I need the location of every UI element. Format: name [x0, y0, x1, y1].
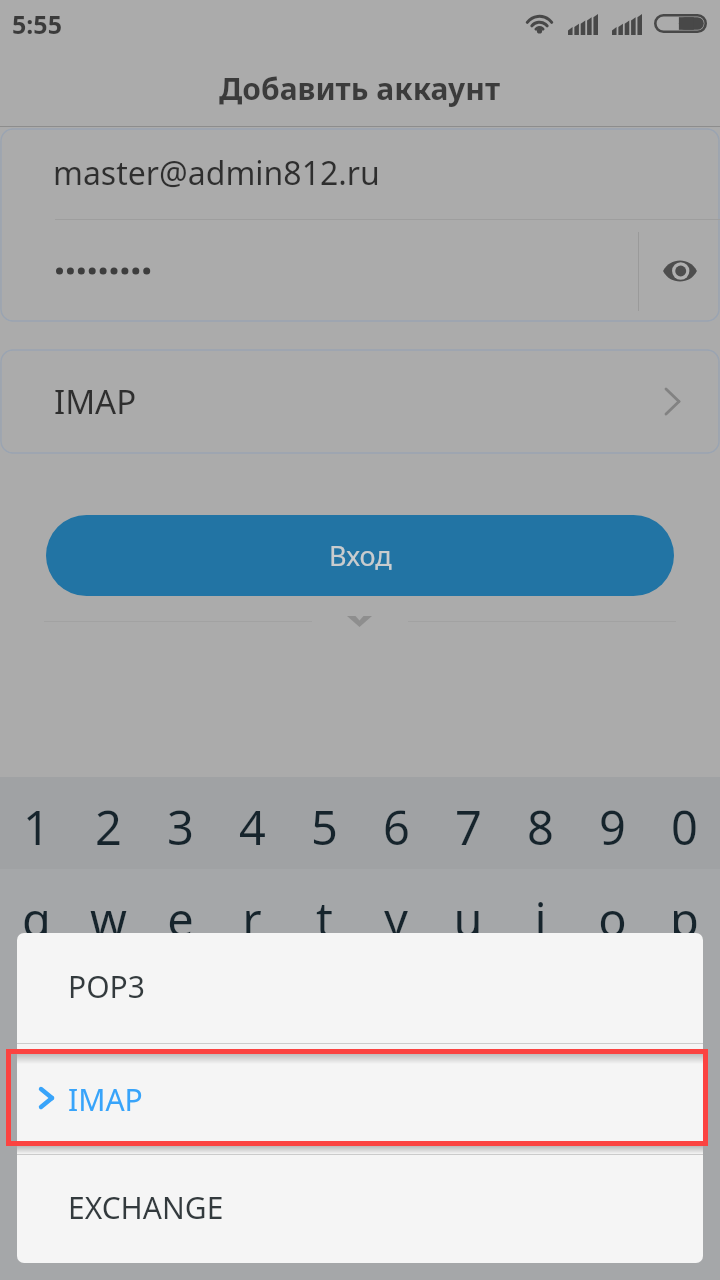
staticText: r	[242, 887, 262, 951]
staticText: u	[453, 887, 483, 951]
button[interactable]: 8	[504, 784, 576, 869]
button[interactable]: Show password	[639, 220, 720, 322]
button[interactable]: IMAP	[17, 1052, 703, 1145]
button[interactable]: p	[648, 876, 720, 961]
staticText: p	[670, 887, 699, 951]
button[interactable]: 7	[432, 784, 504, 869]
button[interactable]: 1	[0, 784, 72, 869]
button[interactable]: 5	[288, 784, 360, 869]
staticText: master@admin812.ru	[53, 151, 380, 195]
staticText: 7	[455, 795, 482, 859]
button[interactable]	[0, 220, 638, 322]
button[interactable]: EXCHANGE	[17, 1155, 703, 1263]
button[interactable]: w	[72, 876, 144, 961]
button[interactable]: y	[360, 876, 432, 961]
button[interactable]: Вход	[46, 515, 674, 596]
staticText: t	[316, 887, 333, 951]
staticText: 0	[671, 795, 698, 859]
staticText: IMAP	[54, 379, 137, 424]
button[interactable]: 2	[72, 784, 144, 869]
button[interactable]: i	[504, 876, 576, 961]
staticText: 6	[383, 795, 410, 859]
staticText: POP3	[68, 966, 145, 1007]
button[interactable]: t	[288, 876, 360, 961]
button[interactable]: o	[576, 876, 648, 961]
staticText: 5:55	[12, 7, 62, 41]
staticText: 5	[311, 795, 338, 859]
button[interactable]: r	[216, 876, 288, 961]
staticText: 9	[599, 795, 626, 859]
staticText: 8	[527, 795, 554, 859]
staticText: y	[384, 887, 408, 951]
button[interactable]: 4	[216, 784, 288, 869]
button[interactable]: master@admin812.ru	[0, 128, 720, 219]
staticText: 2	[95, 795, 122, 859]
button[interactable]: POP3	[17, 933, 703, 1043]
staticText: EXCHANGE	[68, 1187, 224, 1228]
staticText: i	[534, 887, 547, 951]
staticText: IMAP	[68, 1079, 143, 1120]
staticText: 1	[23, 795, 50, 859]
staticText: q	[22, 887, 51, 951]
staticText: 4	[239, 795, 266, 859]
button[interactable]: u	[432, 876, 504, 961]
button[interactable]: 0	[648, 784, 720, 869]
button[interactable]: 3	[144, 784, 216, 869]
button[interactable]: e	[144, 876, 216, 961]
staticText: Вход	[329, 537, 392, 574]
button[interactable]: IMAP	[0, 349, 720, 454]
staticText: 3	[167, 795, 194, 859]
staticText: w	[90, 887, 127, 951]
staticText: Добавить аккаунт	[219, 68, 501, 109]
button[interactable]: 6	[360, 784, 432, 869]
staticText: e	[167, 887, 194, 951]
button[interactable]: 9	[576, 784, 648, 869]
staticText: o	[598, 887, 627, 951]
button[interactable]: q	[0, 876, 72, 961]
